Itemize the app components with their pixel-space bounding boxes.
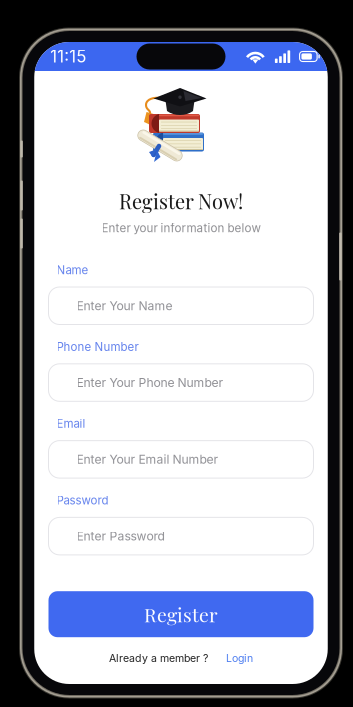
button[interactable]: Register — [48, 591, 313, 637]
staticText: Enter your information below — [101, 221, 260, 235]
staticText: Enter Your Email Number — [76, 452, 218, 467]
staticText: Enter Password — [76, 529, 164, 543]
staticText: Name — [56, 263, 88, 277]
staticText: Already a member ? — [109, 652, 208, 664]
staticText: Enter Your Name — [76, 298, 172, 313]
button[interactable]: Login — [208, 649, 253, 667]
staticText: Enter Your Phone Number — [76, 375, 223, 390]
staticText: Register — [144, 601, 218, 627]
staticText: Login — [226, 652, 253, 664]
staticText: Register Now! — [119, 188, 243, 214]
staticText: Phone Number — [56, 340, 138, 354]
staticText: 11:15 — [50, 46, 86, 67]
staticText: Email — [56, 417, 85, 431]
staticText: Password — [56, 493, 108, 507]
